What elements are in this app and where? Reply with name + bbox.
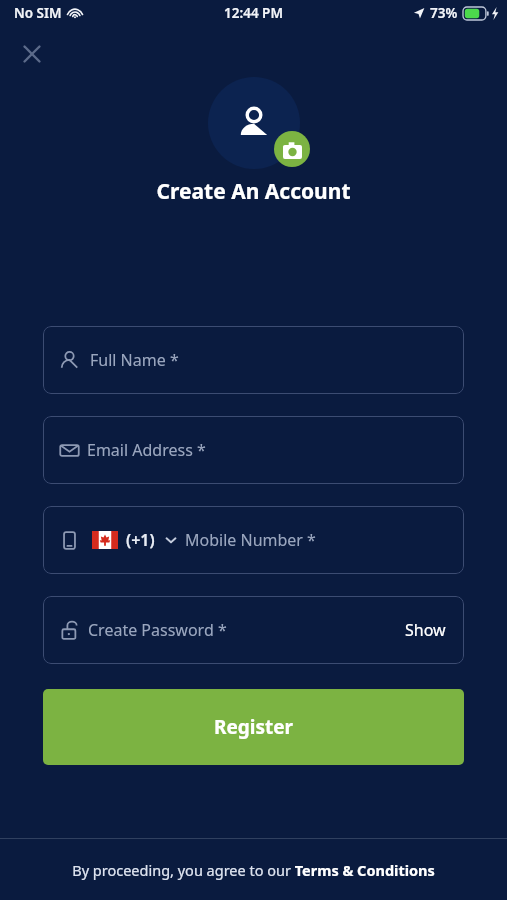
- staticText: Create Password *: [88, 619, 227, 641]
- button[interactable]: Full Name *: [43, 326, 464, 394]
- staticText: By proceeding, you agree to our Terms & …: [72, 860, 435, 880]
- staticText: Mobile Number *: [185, 529, 316, 551]
- button[interactable]: (+1): [43, 506, 464, 574]
- staticText: Show: [405, 619, 446, 641]
- staticText: (+1): [126, 529, 155, 551]
- button[interactable]: Create Password *: [43, 596, 464, 664]
- staticText: No SIM: [14, 4, 62, 22]
- staticText: Register: [214, 714, 294, 740]
- button[interactable]: By proceeding, you agree to our Terms & …: [0, 839, 507, 900]
- button[interactable]: Show: [403, 615, 448, 645]
- button[interactable]: Register: [43, 689, 464, 765]
- button[interactable]: Email Address *: [43, 416, 464, 484]
- staticText: Create An Account: [0, 177, 507, 206]
- button[interactable]: Close: [10, 32, 54, 76]
- staticText: Full Name *: [90, 349, 179, 371]
- button[interactable]: Change profile photo: [208, 77, 300, 169]
- staticText: 12:44 PM: [224, 4, 283, 22]
- staticText: 73%: [430, 4, 458, 22]
- staticText: Email Address *: [87, 439, 206, 461]
